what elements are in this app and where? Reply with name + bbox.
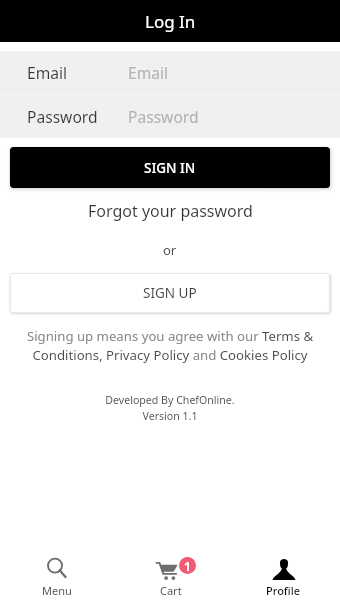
- staticText: Password: [128, 106, 199, 127]
- button[interactable]: Email: [0, 51, 340, 94]
- staticText: or: [163, 241, 177, 259]
- staticText: 1: [184, 558, 191, 574]
- button[interactable]: SIGN UP: [10, 273, 330, 313]
- staticText: Cart: [160, 583, 182, 598]
- button[interactable]: Password: [0, 95, 340, 138]
- staticText: Signing up means you agree with our Term…: [14, 327, 326, 364]
- button[interactable]: Menu: [0, 544, 114, 604]
- staticText: Password: [27, 106, 98, 127]
- staticText: Profile: [266, 583, 301, 598]
- staticText: Email: [128, 62, 169, 83]
- staticText: Forgot your password: [88, 200, 253, 222]
- staticText: Developed By ChefOnline. Version 1.1: [105, 393, 235, 423]
- staticText: Log In: [145, 10, 196, 33]
- staticText: Email: [27, 62, 68, 83]
- staticText: SIGN UP: [143, 284, 197, 302]
- button[interactable]: 1: [114, 544, 227, 604]
- button[interactable]: Profile: [227, 544, 340, 604]
- staticText: Menu: [42, 583, 72, 598]
- button[interactable]: SIGN IN: [10, 147, 330, 188]
- button[interactable]: Forgot your password: [0, 200, 340, 222]
- staticText: SIGN IN: [144, 159, 196, 177]
